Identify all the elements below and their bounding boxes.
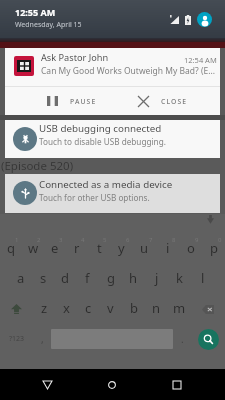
staticText: e [51,239,59,257]
staticText: b [130,299,138,317]
button[interactable]: h [122,264,145,294]
staticText: 2 [37,236,41,244]
button[interactable]: Delete [191,294,225,324]
staticText: g [107,269,115,287]
button[interactable]: 4 [66,234,88,264]
button[interactable]: a [10,264,32,294]
button[interactable]: z [33,294,55,324]
staticText: q [7,239,15,257]
button[interactable]: f [76,264,99,294]
staticText: 7 [149,236,153,244]
button[interactable]: l [191,264,214,294]
button[interactable]: k [168,264,191,294]
staticText: l [201,269,205,287]
staticText: ?123 [9,334,25,344]
staticText: 3 [59,236,63,244]
button[interactable]: d [54,264,76,294]
staticText: USB debugging connected [39,122,162,135]
button[interactable]: USB debugging connected [5,120,220,158]
button[interactable]: m [168,294,191,324]
staticText: h [129,269,138,287]
staticText: Touch for other USB options. [39,192,150,203]
button[interactable]: x [55,294,77,324]
staticText: t [97,239,102,257]
button[interactable]: Back [30,369,64,400]
staticText: v [107,299,114,317]
staticText: 4 [81,236,85,244]
button[interactable]: Search [191,324,225,354]
staticText: Connected as a media device [39,178,173,191]
button[interactable]: j [145,264,168,294]
button[interactable]: PAUSE [38,87,129,115]
staticText: j [155,269,159,287]
staticText: Wednesday, April 15 [15,20,82,30]
button[interactable]: Recents [160,369,194,400]
staticText: Ask Pastor John [41,51,109,64]
staticText: 5 [103,236,107,244]
button[interactable]: 8 [156,234,179,264]
button[interactable]: Home [95,369,129,400]
staticText: PAUSE [70,97,97,106]
staticText: Can My Good Works Outweigh My Bad? (E... [41,65,216,77]
staticText: CLOSE [161,97,188,106]
staticText: s [40,269,47,287]
button[interactable]: 6 [110,234,133,264]
staticText: m [173,299,186,317]
button[interactable]: 1 [0,234,22,264]
staticText: a [17,269,25,287]
staticText: 12:55 AM [15,6,56,18]
staticText: u [140,239,149,257]
button[interactable]: Account [197,12,212,27]
staticText: . [181,332,184,346]
button[interactable]: v [99,294,122,324]
button[interactable]: n [145,294,168,324]
staticText: i [166,239,170,257]
staticText: c [85,299,92,317]
button[interactable]: Shift [0,294,33,324]
button[interactable]: 5 [88,234,110,264]
staticText: y [118,239,125,257]
staticText: d [61,269,69,287]
button[interactable]: 0 [202,234,225,264]
button[interactable]: Connected as a media device [5,174,220,213]
button[interactable]: 9 [179,234,202,264]
staticText: w [28,239,39,257]
staticText: 6 [126,236,130,244]
staticText: k [176,269,183,287]
staticText: o [187,239,195,257]
button[interactable]: s [32,264,54,294]
staticText: 0 [218,236,222,244]
staticText: 8 [172,236,176,244]
button[interactable]: g [99,264,122,294]
staticText: 1 [15,236,19,244]
staticText: 9 [195,236,199,244]
staticText: n [152,299,161,317]
button[interactable]: Ask Pastor John [5,48,220,86]
staticText: x [63,299,70,317]
staticText: p [210,239,218,257]
staticText: 12:54 AM [184,55,217,65]
staticText: (Episode 520) [1,158,74,174]
staticText: Touch to disable USB debugging. [39,136,166,147]
button[interactable]: b [122,294,145,324]
button[interactable]: 7 [133,234,156,264]
staticText: z [41,299,48,317]
button[interactable]: 2 [22,234,44,264]
button[interactable]: c [77,294,99,324]
staticText: , [41,332,44,346]
staticText: r [74,239,80,257]
button[interactable]: 3 [44,234,66,264]
staticText: f [85,269,90,287]
button[interactable]: CLOSE [129,87,220,115]
